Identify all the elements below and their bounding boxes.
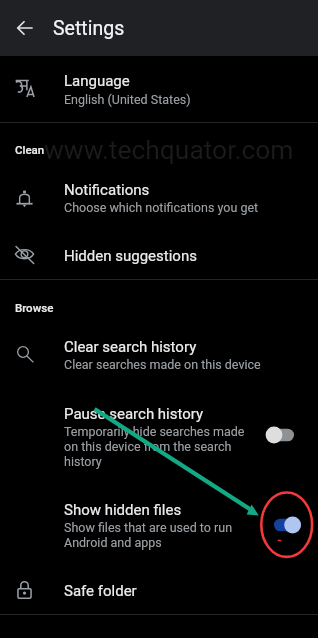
staticText: Notifications [64,181,150,199]
staticText: Hidden suggestions [64,247,197,265]
staticText: Browse [15,301,54,314]
button[interactable] [0,224,318,278]
staticText: Choose which notifications you get [64,200,259,215]
staticText: Language [64,72,130,90]
staticText: Show files that are used to run Android … [64,520,233,550]
staticText: Clean [15,143,45,156]
button[interactable] [0,480,318,566]
button[interactable] [0,122,318,168]
staticText: Clear searches made on this device [64,357,261,372]
staticText: Settings [53,17,125,40]
staticText: Safe folder [64,582,137,600]
button[interactable] [0,566,318,614]
button[interactable]: Pause search history, off [257,415,304,455]
button[interactable] [0,278,318,324]
staticText: English (United States) [64,92,191,107]
staticText: Clear search history [64,338,197,356]
button[interactable] [0,168,318,224]
button[interactable] [0,380,318,480]
staticText: www.techquator.com [44,135,294,166]
staticText: Show hidden files [64,501,182,519]
button[interactable] [0,324,318,380]
button[interactable]: Navigate up [4,8,45,49]
button[interactable] [0,56,318,122]
button[interactable]: Show hidden files, on [264,505,311,545]
staticText: Temporarily hide searches made on this d… [64,424,245,469]
staticText: Pause search history [64,405,204,423]
